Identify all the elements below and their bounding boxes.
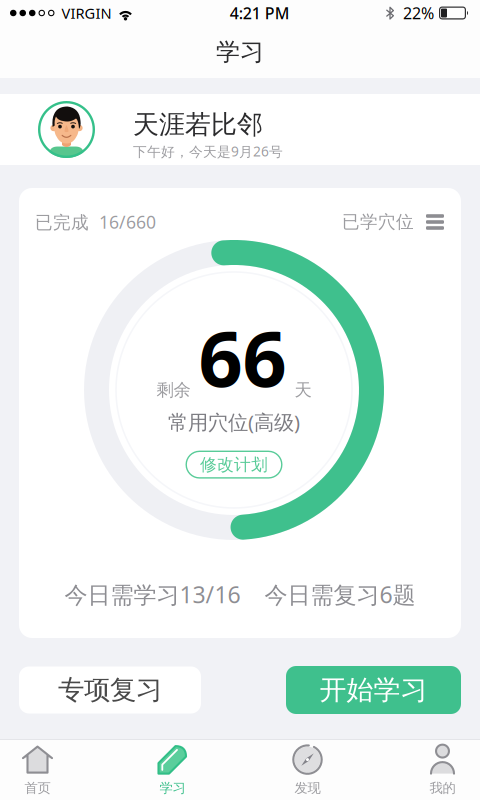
staticText: 今日需复习6题 [264,579,415,610]
button[interactable]: 我的 [405,740,479,800]
staticText: 天涯若比邻 [133,108,263,141]
staticText: 已学穴位 [342,211,414,233]
staticText: 已完成 16/660 [35,210,156,234]
staticText: VIRGIN [61,3,111,23]
staticText: 修改计划 [200,454,268,475]
button[interactable]: 已学穴位 [342,211,444,233]
staticText: 66 [198,305,286,408]
button[interactable]: 专项复习 [19,666,201,713]
staticText: 发现 [294,780,320,796]
button[interactable]: 发现 [270,740,344,800]
staticText: 开始学习 [319,673,427,707]
staticText: 22% [403,2,434,24]
staticText: 我的 [429,780,455,796]
button[interactable]: 首页 [0,740,74,800]
button[interactable]: 开始学习 [286,666,461,714]
staticText: 专项复习 [58,673,162,707]
staticText: 学习 [159,780,185,796]
staticText: 下午好，今天是9月26号 [133,142,283,161]
staticText: 天 [294,379,311,401]
staticText: 学习 [216,37,264,67]
staticText: 首页 [24,780,50,796]
staticText: 常用穴位(高级) [168,408,300,436]
staticText: 4:21 PM [230,2,290,24]
staticText: 今日需学习13/16 [64,579,240,610]
button[interactable]: 修改计划 [185,451,282,479]
staticText: 剩余 [156,379,190,401]
button[interactable]: 学习 [135,740,209,800]
